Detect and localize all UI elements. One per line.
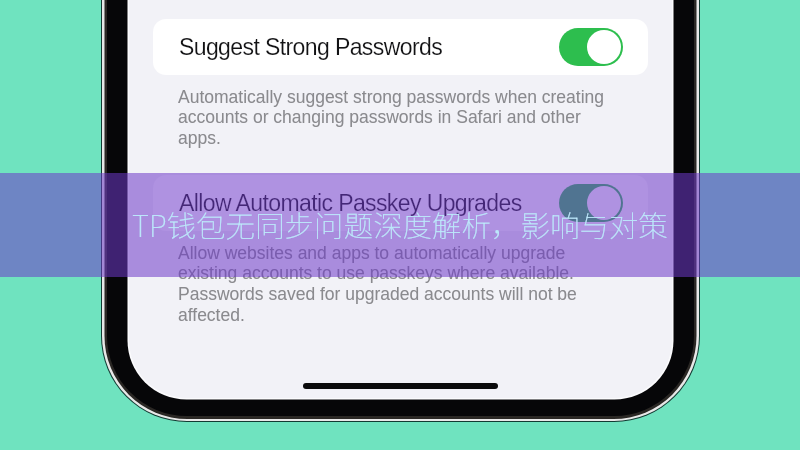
button[interactable]: Allow Automatic Passkey Upgrades [153,175,648,231]
button[interactable]: Suggest Strong Passwords toggle, on [559,28,623,66]
button[interactable]: Suggest Strong Passwords [153,19,648,75]
staticText: Allow Automatic Passkey Upgrades [179,190,522,216]
staticText: Allow websites and apps to automatically… [178,243,620,325]
staticText: TP钱包无同步问题深度解析，影响与对策 [0,203,800,246]
staticText: Automatically suggest strong passwords w… [178,87,620,148]
button[interactable]: Allow Automatic Passkey Upgrades toggle,… [559,184,623,222]
staticText: Suggest Strong Passwords [179,34,443,60]
